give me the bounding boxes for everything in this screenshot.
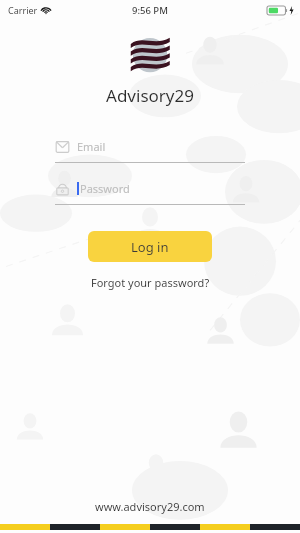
other: Email — [55, 140, 70, 154]
staticText: Password — [80, 181, 130, 196]
staticText: www.advisory29.com — [95, 499, 205, 514]
staticText: Forgot your password? — [91, 275, 210, 290]
button[interactable]: Password — [55, 181, 245, 205]
staticText: Advisory29 — [106, 84, 194, 107]
button[interactable]: Forgot your password? — [83, 272, 218, 293]
button[interactable]: Log in — [88, 231, 212, 262]
other: Password — [55, 182, 70, 196]
staticText: Log in — [131, 238, 169, 256]
staticText: 9:56 PM — [132, 4, 168, 17]
staticText: Email — [77, 139, 106, 154]
button[interactable]: Email — [55, 139, 245, 163]
staticText: Carrier — [8, 4, 38, 16]
